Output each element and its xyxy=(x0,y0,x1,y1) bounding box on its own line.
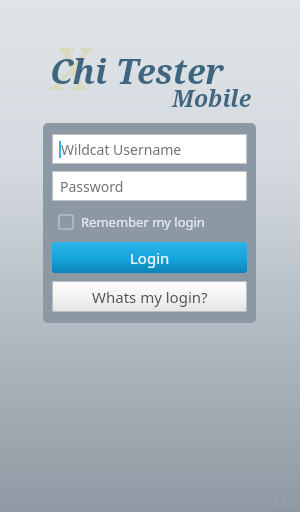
staticText: Password xyxy=(60,177,124,196)
staticText: Login xyxy=(130,248,170,268)
button[interactable]: Wildcat Username xyxy=(52,134,247,164)
button[interactable]: Remember my login xyxy=(52,211,247,233)
staticText: Remember my login xyxy=(81,213,205,231)
staticText: Mobile xyxy=(172,82,252,113)
button[interactable]: Whats my login? xyxy=(52,281,247,312)
staticText: Whats my login? xyxy=(92,287,208,307)
button[interactable]: Password xyxy=(52,171,247,201)
staticText: Wildcat Username xyxy=(61,140,182,159)
staticText: Chi Tester xyxy=(50,48,224,94)
button[interactable]: Login xyxy=(52,242,247,273)
staticText: X xyxy=(52,28,91,107)
